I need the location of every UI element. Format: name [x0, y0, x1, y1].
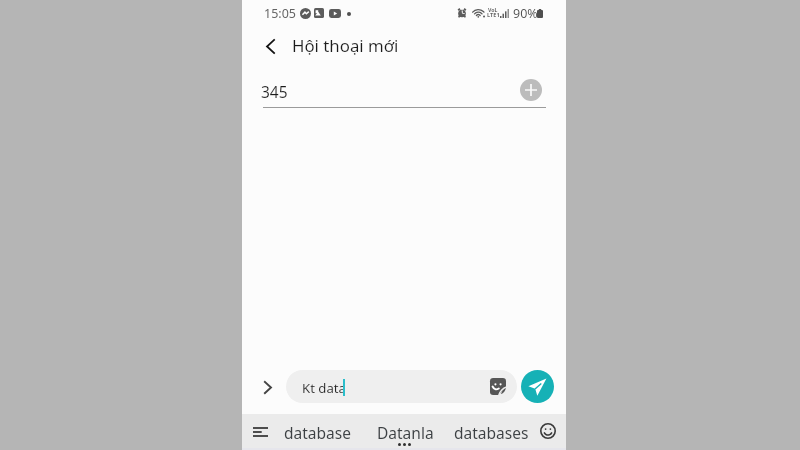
staticText: databases [454, 422, 529, 443]
staticText: 15:05 [264, 5, 296, 22]
button[interactable]: Back [254, 30, 287, 63]
button[interactable]: Stickers [487, 376, 508, 397]
staticText: 90% [513, 5, 538, 22]
button[interactable]: Add recipient [520, 79, 542, 101]
button[interactable]: Keyboard menu [245, 417, 275, 447]
button[interactable]: Kt data [286, 370, 517, 403]
staticText: Kt data [302, 379, 347, 397]
button[interactable]: Emoji [534, 417, 562, 445]
button[interactable]: Datanla [370, 414, 440, 450]
staticText: Datanla [377, 422, 434, 443]
staticText: 345 [261, 81, 288, 102]
button[interactable]: database [276, 414, 358, 450]
staticText: VoL [488, 6, 498, 13]
staticText: Hội thoại mới [292, 34, 399, 57]
button[interactable]: databases [449, 414, 534, 450]
button[interactable]: Expand options [252, 371, 284, 403]
staticText: database [284, 422, 351, 443]
staticText: LTE1 [487, 11, 500, 19]
button[interactable]: Send [521, 370, 554, 403]
button[interactable]: 345 [259, 73, 514, 109]
